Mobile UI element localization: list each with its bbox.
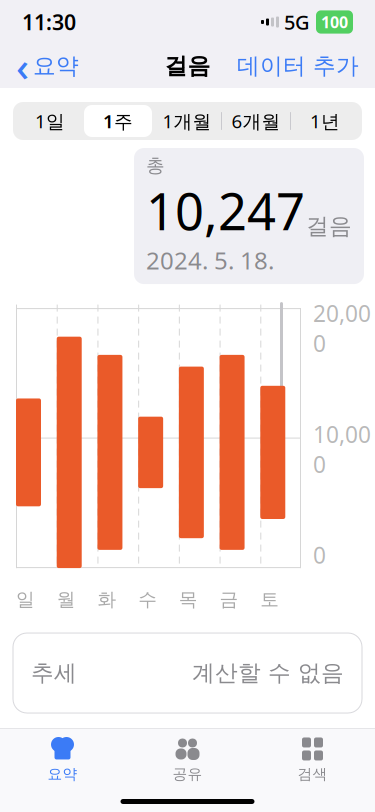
staticText: 목	[179, 588, 198, 611]
staticText: 걸음	[306, 212, 352, 240]
staticText: 수	[138, 588, 157, 611]
staticText: 추세	[31, 659, 77, 687]
button[interactable]: 1일	[16, 105, 84, 137]
staticText: 공유	[172, 765, 202, 783]
button[interactable]: 모두 보기	[250, 778, 357, 812]
staticText: 6개월	[231, 109, 280, 133]
staticText: 20,000	[313, 298, 371, 358]
staticText: ‹	[16, 39, 29, 92]
button[interactable]: 1년	[291, 105, 359, 137]
staticText: 요약	[47, 765, 77, 783]
staticText: 11:30	[22, 8, 76, 36]
staticText: 2024. 5. 18.	[146, 244, 274, 276]
button[interactable]: 추세	[13, 633, 362, 713]
button[interactable]: 공유	[125, 734, 250, 784]
staticText: 1년	[310, 109, 340, 133]
staticText: 1개월	[162, 109, 211, 133]
staticText: 요약	[33, 52, 79, 80]
staticText: 100	[321, 11, 348, 33]
button[interactable]: 데이터 추가	[233, 46, 363, 86]
staticText: 월	[57, 588, 76, 611]
button[interactable]: 1개월	[153, 105, 221, 137]
staticText: 하이라이트	[18, 773, 178, 812]
staticText: 금	[220, 588, 239, 611]
staticText: 데이터 추가	[237, 52, 359, 80]
staticText: 검색	[297, 765, 327, 783]
staticText: 1주	[103, 109, 133, 133]
staticText: 화	[97, 588, 116, 611]
staticText: 걸음	[164, 52, 210, 80]
button[interactable]: ‹	[12, 33, 83, 98]
staticText: 총	[146, 154, 165, 177]
button[interactable]: 6개월	[222, 105, 290, 137]
staticText: 1일	[35, 109, 65, 133]
staticText: 10,000	[313, 419, 371, 479]
staticText: 5G	[284, 9, 310, 35]
button[interactable]: 요약	[0, 734, 125, 784]
staticText: 10,247	[146, 177, 305, 244]
staticText: 일	[16, 588, 35, 611]
button[interactable]: 1주	[84, 105, 152, 137]
staticText: 토	[260, 588, 279, 611]
button[interactable]: 검색	[250, 734, 375, 784]
staticText: 0	[313, 540, 326, 570]
staticText: 계산할 수 없음	[192, 659, 344, 687]
